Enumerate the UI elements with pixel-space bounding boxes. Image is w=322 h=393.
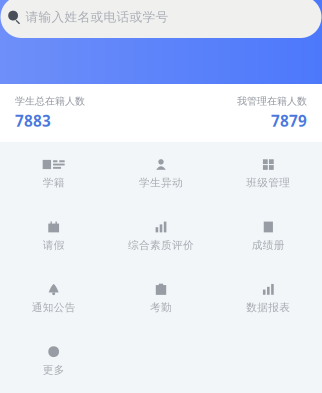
button[interactable]: 学籍 bbox=[0, 159, 107, 189]
button[interactable]: 更多 bbox=[0, 346, 107, 377]
staticText: 学生总在籍人数 bbox=[15, 95, 85, 107]
staticText: 学籍 bbox=[43, 176, 65, 189]
button[interactable]: 学生异动 bbox=[107, 159, 215, 189]
staticText: 考勤 bbox=[150, 301, 172, 314]
staticText: 7883 bbox=[15, 110, 51, 131]
staticText: 我管理在籍人数 bbox=[237, 95, 307, 107]
staticText: 数据报表 bbox=[246, 301, 290, 314]
button[interactable]: 班级管理 bbox=[215, 159, 322, 189]
button[interactable]: 成绩册 bbox=[215, 221, 322, 252]
staticText: 请假 bbox=[43, 238, 65, 252]
staticText: 班级管理 bbox=[246, 176, 290, 189]
button[interactable]: 考勤 bbox=[107, 284, 215, 314]
button[interactable]: 通知公告 bbox=[0, 284, 107, 314]
staticText: 通知公告 bbox=[32, 301, 76, 314]
button[interactable]: 综合素质评价 bbox=[107, 221, 215, 252]
staticText: 成绩册 bbox=[252, 238, 285, 252]
staticText: 学生异动 bbox=[139, 176, 183, 189]
button[interactable]: 请输入姓名或电话或学号 bbox=[0, 0, 321, 38]
staticText: 更多 bbox=[43, 363, 65, 377]
staticText: 综合素质评价 bbox=[128, 238, 194, 252]
button[interactable]: 请假 bbox=[0, 221, 107, 252]
staticText: 请输入姓名或电话或学号 bbox=[25, 9, 168, 25]
staticText: 7879 bbox=[271, 110, 307, 131]
button[interactable]: 数据报表 bbox=[215, 284, 322, 314]
